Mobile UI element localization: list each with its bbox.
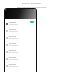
button[interactable] <box>5 20 36 27</box>
button[interactable] <box>5 55 36 62</box>
button[interactable] <box>30 21 34 23</box>
button[interactable] <box>5 41 36 48</box>
button[interactable] <box>5 48 36 55</box>
button[interactable] <box>5 34 36 41</box>
button[interactable] <box>5 62 36 69</box>
staticText: with everything you need today <box>17 6 47 9</box>
button[interactable] <box>5 27 36 34</box>
staticText: Build a connected… <box>22 2 43 5</box>
